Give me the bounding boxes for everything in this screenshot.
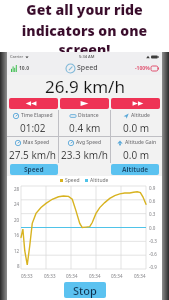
staticText: indicators on one screen!	[0, 21, 169, 52]
staticText: 05:33	[44, 273, 56, 279]
staticText: 05:34	[134, 273, 146, 279]
staticText: Distance	[78, 112, 99, 119]
staticText: 0.6	[149, 198, 156, 204]
button[interactable]: Altitude Gain	[111, 137, 162, 163]
staticText: 20	[14, 217, 20, 223]
staticText: 24	[14, 201, 20, 207]
staticText: 0.0	[149, 225, 156, 231]
staticText: 28	[14, 186, 20, 192]
staticText: Altitude	[131, 112, 150, 119]
button[interactable]: Speed	[66, 63, 98, 73]
button[interactable]: Signal	[10, 64, 30, 73]
staticText: -0.6	[149, 251, 157, 257]
staticText: 01:02	[20, 121, 46, 135]
staticText: 8	[17, 263, 20, 269]
staticText: -100%	[135, 65, 150, 72]
other: Signal	[11, 65, 18, 72]
button[interactable]: Speed	[10, 164, 58, 175]
button[interactable]: Altitude	[111, 110, 162, 136]
staticText: 05:34	[89, 273, 101, 279]
staticText: Stop	[73, 283, 97, 298]
staticText: 0.9	[149, 185, 156, 191]
button[interactable]: Altitude	[111, 164, 159, 175]
button[interactable]: Avg Speed	[59, 137, 110, 163]
staticText: Altitude Gain	[125, 139, 157, 146]
staticText: -0.3	[149, 238, 157, 244]
staticText: 05:34	[66, 273, 78, 279]
staticText: Avg Speed	[76, 139, 102, 146]
staticText: Altitude	[122, 165, 149, 174]
staticText: 16	[14, 232, 20, 238]
staticText: 23.3 km/h	[61, 148, 109, 162]
staticText: Speed	[24, 165, 44, 174]
button[interactable]: Time Elapsed	[7, 110, 58, 136]
staticText: Carrier	[10, 54, 24, 59]
staticText: 5:34 AM	[79, 54, 95, 59]
button[interactable]: Distance	[59, 110, 110, 136]
staticText: Altitude	[90, 177, 109, 184]
staticText: 12	[14, 248, 20, 254]
staticText: Max Speed	[23, 139, 50, 146]
staticText: 0.4 km	[69, 121, 101, 135]
staticText: 10.0	[19, 65, 29, 72]
staticText: 0.0 m	[123, 121, 150, 135]
staticText: Get all your ride	[26, 0, 143, 19]
button[interactable]: Previous	[9, 98, 58, 109]
button[interactable]: Play	[60, 98, 109, 109]
staticText: Time Elapsed	[21, 112, 53, 119]
staticText: 05:33	[21, 273, 33, 279]
staticText: 05:34	[111, 273, 123, 279]
button[interactable]: Stop	[64, 282, 106, 298]
staticText: 0.0 m	[123, 148, 150, 162]
staticText: Speed	[77, 63, 98, 73]
staticText: Speed	[65, 177, 80, 184]
staticText: 26.9 km/h	[45, 75, 125, 97]
button[interactable]: Max Speed	[7, 137, 58, 163]
staticText: 27.5 km/h	[9, 148, 57, 162]
staticText: 0.3	[149, 211, 156, 217]
staticText: -0.9	[149, 264, 157, 270]
button[interactable]: Next	[111, 98, 160, 109]
